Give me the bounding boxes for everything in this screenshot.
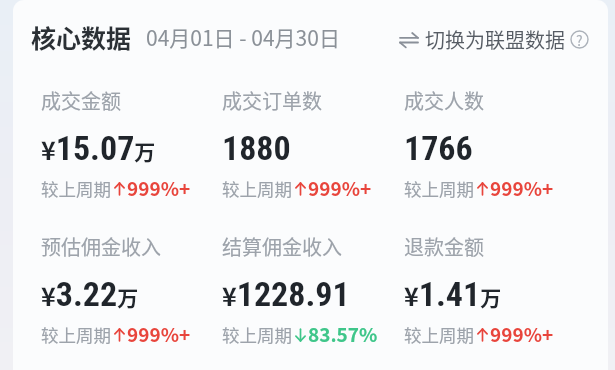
staticText: 预估佣金收入 bbox=[41, 232, 161, 261]
staticText: 较上周期 bbox=[404, 176, 474, 201]
staticText: ¥15.07万 bbox=[41, 128, 156, 168]
staticText: 成交金额 bbox=[41, 86, 121, 115]
staticText: 999%+ bbox=[127, 174, 191, 202]
staticText: 成交人数 bbox=[404, 86, 484, 115]
staticText: 较上周期 bbox=[41, 176, 111, 201]
staticText: 成交订单数 bbox=[222, 86, 322, 115]
staticText: 切换为联盟数据 bbox=[425, 25, 565, 54]
button[interactable]: 预估佣金收入 bbox=[41, 232, 222, 342]
staticText: 04月01日 - 04月30日 bbox=[146, 22, 340, 52]
staticText: 1766 bbox=[404, 128, 473, 168]
staticText: 核心数据 bbox=[31, 19, 132, 55]
staticText: ¥3.22万 bbox=[41, 274, 139, 314]
button[interactable]: 结算佣金收入 bbox=[222, 232, 403, 342]
button[interactable]: 成交金额 bbox=[41, 86, 222, 196]
button[interactable]: 成交人数 bbox=[404, 86, 585, 196]
button[interactable]: 退款金额 bbox=[404, 232, 585, 342]
staticText: 83.57% bbox=[308, 320, 378, 348]
staticText: 退款金额 bbox=[404, 232, 484, 261]
other: 切换数据 bbox=[399, 31, 419, 49]
button[interactable]: 切换数据 bbox=[399, 25, 565, 54]
button[interactable]: 成交订单数 bbox=[222, 86, 403, 196]
staticText: 1880 bbox=[222, 128, 291, 168]
button[interactable]: 帮助说明 bbox=[570, 30, 589, 49]
staticText: 结算佣金收入 bbox=[222, 232, 342, 261]
staticText: 999%+ bbox=[127, 320, 191, 348]
staticText: 较上周期 bbox=[222, 322, 292, 347]
staticText: ¥1.41万 bbox=[404, 274, 502, 314]
staticText: 999%+ bbox=[308, 174, 372, 202]
staticText: 999%+ bbox=[490, 174, 554, 202]
staticText: 较上周期 bbox=[222, 176, 292, 201]
staticText: 较上周期 bbox=[41, 322, 111, 347]
staticText: 较上周期 bbox=[404, 322, 474, 347]
staticText: 999%+ bbox=[490, 320, 554, 348]
staticText: ? bbox=[576, 30, 583, 49]
staticText: ¥1228.91 bbox=[222, 274, 350, 314]
